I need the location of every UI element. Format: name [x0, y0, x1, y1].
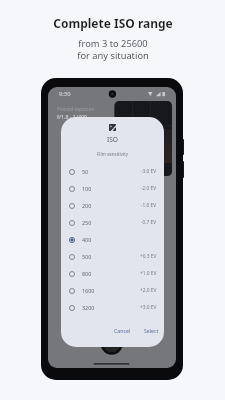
button[interactable]: 400: [61, 231, 164, 248]
button[interactable]: 1600: [61, 282, 164, 299]
button[interactable]: 800: [61, 265, 164, 282]
staticText: +2.0 EV: [140, 287, 157, 294]
staticText: Select: [144, 327, 159, 334]
staticText: +1.0 EV: [140, 270, 157, 277]
button[interactable]: Cancel: [110, 324, 135, 337]
staticText: 200: [82, 202, 92, 209]
staticText: +3.0 EV: [140, 304, 157, 311]
button[interactable]: 3200: [61, 299, 164, 316]
staticText: 50: [82, 168, 89, 175]
staticText: +0.3 EV: [140, 253, 157, 260]
staticText: Complete ISO range: [53, 15, 173, 31]
staticText: 100: [82, 185, 92, 192]
staticText: -3.0 EV: [141, 168, 157, 175]
staticText: -0.7 EV: [141, 219, 157, 226]
staticText: -1.0 EV: [141, 202, 157, 209]
button[interactable]: Select: [140, 324, 163, 337]
staticText: from 3 to 25600 for any situation: [77, 37, 149, 62]
staticText: Cancel: [114, 327, 131, 334]
button[interactable]: 200: [61, 197, 164, 214]
staticText: 9:30: [59, 90, 71, 98]
button[interactable]: 50: [61, 163, 164, 180]
staticText: 800: [82, 270, 92, 277]
staticText: 3200: [82, 304, 95, 311]
other: Exposure: [109, 124, 116, 131]
staticText: 400: [82, 236, 92, 243]
staticText: Film sensitivity: [97, 151, 128, 157]
button[interactable]: 500: [61, 248, 164, 265]
staticText: 1600: [82, 287, 95, 294]
staticText: ISO: [107, 135, 119, 144]
staticText: -2.0 EV: [141, 185, 157, 192]
button[interactable]: 100: [61, 180, 164, 197]
staticText: 500: [82, 253, 92, 260]
staticText: Pointed exposure: [57, 106, 95, 112]
staticText: 250: [82, 219, 92, 226]
button[interactable]: 250: [61, 214, 164, 231]
staticText: f/1.8 - 1/400: [57, 113, 88, 120]
